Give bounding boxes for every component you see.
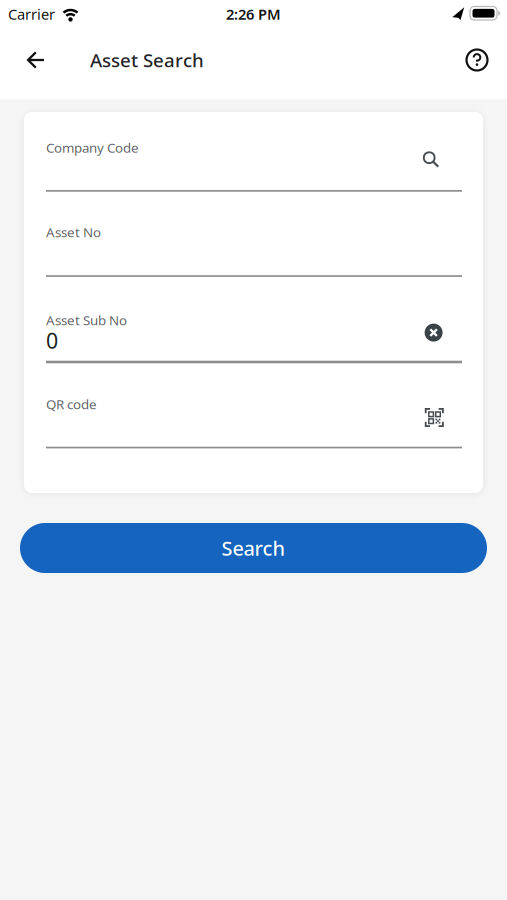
staticText: Asset Sub No — [46, 311, 127, 329]
button[interactable]: Search — [20, 523, 487, 573]
staticText: QR code — [46, 395, 97, 413]
button[interactable]: Back — [16, 40, 56, 80]
staticText: Asset Search — [90, 48, 204, 72]
staticText: Asset No — [46, 223, 101, 241]
button[interactable]: Clear — [419, 318, 449, 348]
button[interactable]: Scan QR code — [419, 402, 449, 432]
staticText: Carrier — [8, 4, 55, 24]
staticText: Company Code — [46, 139, 139, 156]
staticText: Search — [221, 535, 285, 561]
button[interactable]: Search company code — [416, 144, 446, 174]
button[interactable]: Help — [459, 42, 495, 78]
staticText: 2:26 PM — [226, 4, 281, 24]
staticText: 0 — [46, 326, 58, 355]
